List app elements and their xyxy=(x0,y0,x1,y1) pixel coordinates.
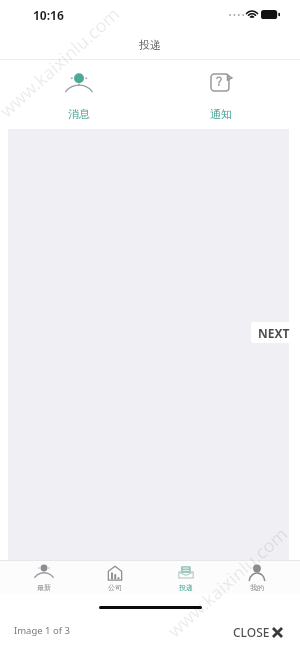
staticText: 10:16 xyxy=(33,7,64,23)
other: Wi-Fi xyxy=(246,9,258,19)
button[interactable]: 我的 xyxy=(227,561,287,594)
button[interactable]: 通知 xyxy=(176,62,266,124)
button[interactable]: 投递 xyxy=(156,561,216,594)
button[interactable]: 公司 xyxy=(85,561,145,594)
staticText: 消息 xyxy=(34,107,124,121)
button[interactable]: CLOSE xyxy=(233,621,284,643)
other: Cellular signal xyxy=(229,13,244,17)
staticText: 公司 xyxy=(85,583,145,592)
staticText: www.kaixinlu.com xyxy=(162,521,293,643)
button[interactable]: 最新 xyxy=(14,561,74,594)
staticText: 通知 xyxy=(176,107,266,121)
staticText: 最新 xyxy=(14,583,74,592)
button[interactable]: 消息 xyxy=(34,62,124,124)
staticText: 我的 xyxy=(227,583,287,592)
staticText: NEXT xyxy=(258,325,290,341)
staticText: Image 1 of 3 xyxy=(14,624,70,637)
staticText: 投递 xyxy=(0,38,300,52)
staticText: CLOSE xyxy=(233,624,270,640)
staticText: 投递 xyxy=(156,583,216,592)
other: Battery xyxy=(261,10,280,19)
staticText: www.kaixinlu.com xyxy=(0,1,125,123)
button[interactable]: NEXT xyxy=(251,322,295,343)
